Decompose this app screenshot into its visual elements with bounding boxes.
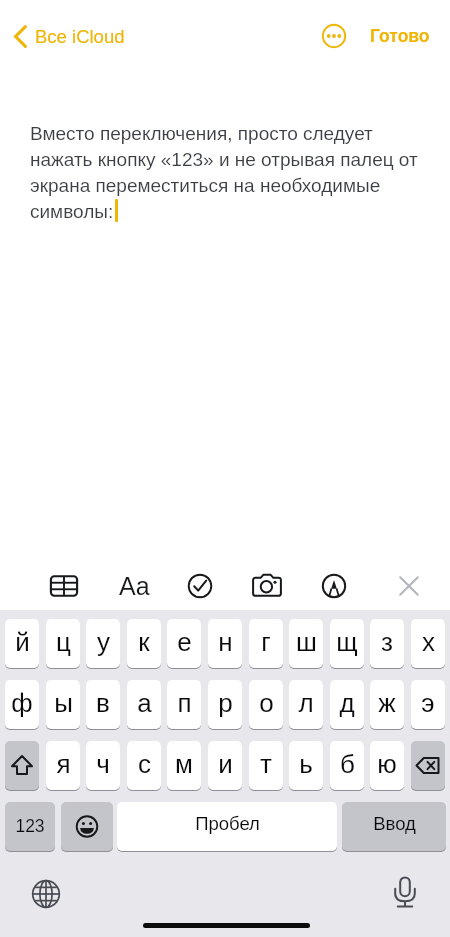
button[interactable]: ы bbox=[46, 680, 80, 729]
button[interactable]: Change keyboard language bbox=[32, 880, 60, 908]
button[interactable]: э bbox=[411, 680, 445, 729]
staticText: д bbox=[339, 688, 355, 717]
staticText: ю bbox=[377, 749, 397, 778]
staticText: к bbox=[138, 627, 150, 656]
button[interactable]: Markup bbox=[314, 566, 354, 606]
button[interactable]: а bbox=[127, 680, 161, 729]
staticText: о bbox=[259, 688, 274, 717]
staticText: а bbox=[137, 688, 152, 717]
button[interactable]: Shift bbox=[5, 741, 39, 790]
staticText: ж bbox=[378, 688, 396, 717]
button[interactable]: л bbox=[289, 680, 323, 729]
button[interactable]: д bbox=[330, 680, 364, 729]
staticText: с bbox=[138, 749, 151, 778]
staticText: л bbox=[298, 688, 314, 717]
button[interactable]: з bbox=[370, 619, 404, 668]
staticText: й bbox=[15, 627, 30, 656]
staticText: Aa bbox=[119, 572, 150, 600]
button[interactable]: ш bbox=[289, 619, 323, 668]
staticText: Ввод bbox=[373, 813, 416, 834]
button[interactable]: г bbox=[249, 619, 283, 668]
button[interactable]: ь bbox=[289, 741, 323, 790]
staticText: е bbox=[177, 627, 192, 656]
button[interactable]: Dictation bbox=[387, 874, 423, 910]
staticText: б bbox=[340, 749, 355, 778]
button[interactable]: к bbox=[127, 619, 161, 668]
staticText: р bbox=[218, 688, 233, 717]
button[interactable]: р bbox=[208, 680, 242, 729]
button[interactable]: Backspace bbox=[411, 741, 445, 790]
staticText: ч bbox=[96, 749, 110, 778]
staticText: ф bbox=[11, 688, 33, 717]
button[interactable]: о bbox=[249, 680, 283, 729]
button[interactable]: с bbox=[127, 741, 161, 790]
button[interactable]: ч bbox=[86, 741, 120, 790]
staticText: ш bbox=[296, 627, 317, 656]
button[interactable]: т bbox=[249, 741, 283, 790]
staticText: м bbox=[175, 749, 193, 778]
button[interactable]: м bbox=[167, 741, 201, 790]
staticText: п bbox=[177, 688, 192, 717]
staticText: Вместо переключения, просто следует нажа… bbox=[30, 123, 426, 222]
staticText: г bbox=[261, 627, 271, 656]
button[interactable]: Table bbox=[44, 566, 84, 606]
staticText: х bbox=[422, 627, 435, 656]
button[interactable]: б bbox=[330, 741, 364, 790]
button[interactable]: в bbox=[86, 680, 120, 729]
button[interactable]: щ bbox=[330, 619, 364, 668]
button[interactable]: Close keyboard bbox=[389, 566, 429, 606]
button[interactable]: ф bbox=[5, 680, 39, 729]
staticText: в bbox=[96, 688, 110, 717]
button[interactable]: Checklist bbox=[180, 566, 220, 606]
staticText: Готово bbox=[370, 26, 430, 46]
staticText: ы bbox=[54, 688, 73, 717]
staticText: Все iCloud bbox=[35, 26, 125, 47]
staticText: у bbox=[97, 627, 110, 656]
button[interactable]: ж bbox=[370, 680, 404, 729]
staticText: 123 bbox=[15, 816, 45, 836]
button[interactable]: Ввод bbox=[342, 802, 446, 851]
button[interactable]: и bbox=[208, 741, 242, 790]
staticText: щ bbox=[336, 627, 358, 656]
staticText: и bbox=[218, 749, 233, 778]
button[interactable]: 123 bbox=[5, 802, 55, 851]
staticText: ц bbox=[56, 627, 71, 656]
button[interactable]: Camera bbox=[247, 566, 287, 606]
button[interactable]: е bbox=[167, 619, 201, 668]
staticText: н bbox=[218, 627, 233, 656]
button[interactable]: ю bbox=[370, 741, 404, 790]
button[interactable]: Пробел bbox=[117, 802, 337, 851]
staticText: т bbox=[260, 749, 272, 778]
staticText: ь bbox=[299, 749, 313, 778]
button[interactable]: й bbox=[5, 619, 39, 668]
button[interactable]: ц bbox=[46, 619, 80, 668]
button[interactable]: Все iCloud bbox=[10, 20, 129, 53]
button[interactable]: п bbox=[167, 680, 201, 729]
button[interactable]: More options bbox=[314, 16, 354, 56]
staticText: я bbox=[56, 749, 71, 778]
button[interactable]: н bbox=[208, 619, 242, 668]
button[interactable]: Emoji bbox=[61, 802, 113, 851]
staticText: з bbox=[381, 627, 393, 656]
button[interactable]: Готово bbox=[365, 20, 435, 52]
staticText: э bbox=[421, 688, 435, 717]
staticText: Пробел bbox=[195, 813, 260, 834]
button[interactable]: х bbox=[411, 619, 445, 668]
button[interactable]: Aa bbox=[114, 566, 154, 606]
button[interactable]: я bbox=[46, 741, 80, 790]
button[interactable]: у bbox=[86, 619, 120, 668]
